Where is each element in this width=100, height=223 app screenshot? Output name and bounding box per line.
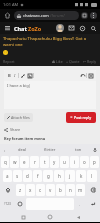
button[interactable]: x (26, 184, 35, 196)
button[interactable]: chatzozo.com (14, 11, 79, 20)
button[interactable]: g (43, 170, 53, 182)
button[interactable]: Voice input (92, 147, 98, 153)
button[interactable]: o (80, 156, 89, 168)
button[interactable]: d (23, 170, 32, 182)
button[interactable]: Like (52, 59, 63, 64)
button[interactable]: c (36, 184, 45, 196)
staticText: flirtier (44, 147, 56, 152)
button[interactable]: a (3, 170, 12, 182)
staticText: Share (10, 127, 21, 132)
button[interactable]: v (46, 184, 55, 196)
staticText: I have a big| (7, 83, 31, 88)
button[interactable]: e (20, 156, 29, 168)
staticText: y (53, 159, 56, 165)
button[interactable]: s (13, 170, 22, 182)
staticText: Like (56, 59, 63, 64)
button[interactable]: n (66, 184, 75, 196)
staticText: n (69, 187, 72, 193)
button[interactable]: Alerts (78, 24, 86, 32)
staticText: v (49, 187, 52, 193)
button[interactable]: Search (89, 24, 97, 32)
staticText: ton (75, 147, 82, 152)
button[interactable]: z (16, 184, 25, 196)
button[interactable]: Enter (86, 198, 99, 210)
button[interactable]: Menu (3, 24, 12, 33)
button[interactable]: Emoji (15, 198, 25, 210)
staticText: z (19, 187, 22, 193)
button[interactable]: Attach files (4, 113, 33, 122)
button[interactable]: Post reply (66, 112, 96, 123)
staticText: c (39, 187, 42, 193)
staticText: Thapachutu Thapachuku Bigg Boss!! Got a … (3, 36, 97, 48)
button[interactable]: flirtier (36, 147, 64, 152)
staticText: I (14, 73, 16, 79)
staticText: B (8, 73, 11, 79)
button[interactable]: + Quote (66, 59, 80, 64)
staticText: l (91, 173, 93, 179)
button[interactable]: w (10, 156, 19, 168)
staticText: f (37, 173, 39, 179)
staticText: e (23, 159, 26, 165)
staticText: p (93, 159, 96, 165)
button[interactable]: h (54, 170, 64, 182)
button[interactable]: Undo (79, 71, 86, 80)
staticText: u (63, 159, 66, 165)
staticText: o (83, 159, 86, 165)
button[interactable]: f (33, 170, 42, 182)
button[interactable]: Backspace (86, 184, 99, 196)
staticText: g (47, 173, 50, 179)
button[interactable]: ↩ Reply (83, 59, 97, 64)
button[interactable]: b (56, 184, 65, 196)
button[interactable]: Shift (1, 184, 15, 196)
button[interactable]: m (76, 184, 85, 196)
staticText: . (79, 202, 81, 207)
button[interactable]: j (65, 170, 75, 182)
staticText: ?123 (4, 202, 11, 206)
button[interactable]: i (70, 156, 79, 168)
button[interactable]: Tabs (81, 12, 88, 19)
button[interactable]: ton (64, 147, 92, 152)
button[interactable]: u (60, 156, 69, 168)
staticText: j (69, 173, 71, 179)
button[interactable]: Back (18, 212, 28, 222)
button[interactable]: l (87, 170, 97, 182)
button[interactable]: p (90, 156, 99, 168)
staticText: w (13, 159, 17, 165)
button[interactable]: Home (3, 11, 12, 20)
button[interactable]: ?123 (1, 198, 14, 210)
staticText: Key forum item menu (4, 136, 46, 141)
button[interactable]: Recents (73, 212, 83, 222)
button[interactable]: Share (4, 127, 21, 132)
staticText: m (78, 187, 83, 193)
button[interactable]: Messages (67, 24, 75, 32)
button[interactable]: k (76, 170, 86, 182)
button[interactable]: ‹ (2, 147, 8, 153)
button[interactable]: More options (90, 12, 97, 19)
button[interactable]: Link (19, 71, 26, 80)
staticText: t (44, 159, 46, 165)
button[interactable]: Home (45, 212, 55, 222)
staticText: d (26, 173, 29, 179)
button[interactable]: I have a big| (4, 81, 96, 109)
button[interactable]: Image (26, 71, 33, 80)
staticText: Chat (14, 25, 27, 32)
button[interactable]: deal (8, 147, 36, 152)
button[interactable]: r (30, 156, 39, 168)
staticText: k (80, 173, 83, 179)
button[interactable]: y (50, 156, 59, 168)
button[interactable]: t (40, 156, 49, 168)
staticText: q (4, 159, 7, 165)
button[interactable]: Chat (14, 25, 42, 32)
staticText: b (59, 187, 62, 193)
button[interactable]: B (6, 71, 12, 80)
staticText: a (6, 173, 9, 179)
staticText: 1:01 AM (3, 2, 19, 7)
button[interactable]: Redo (87, 71, 94, 80)
staticText: i (74, 159, 76, 165)
button[interactable]: q (1, 156, 9, 168)
button[interactable]: Account (56, 24, 64, 32)
button[interactable]: Report (3, 59, 15, 64)
button[interactable]: I (12, 71, 18, 80)
